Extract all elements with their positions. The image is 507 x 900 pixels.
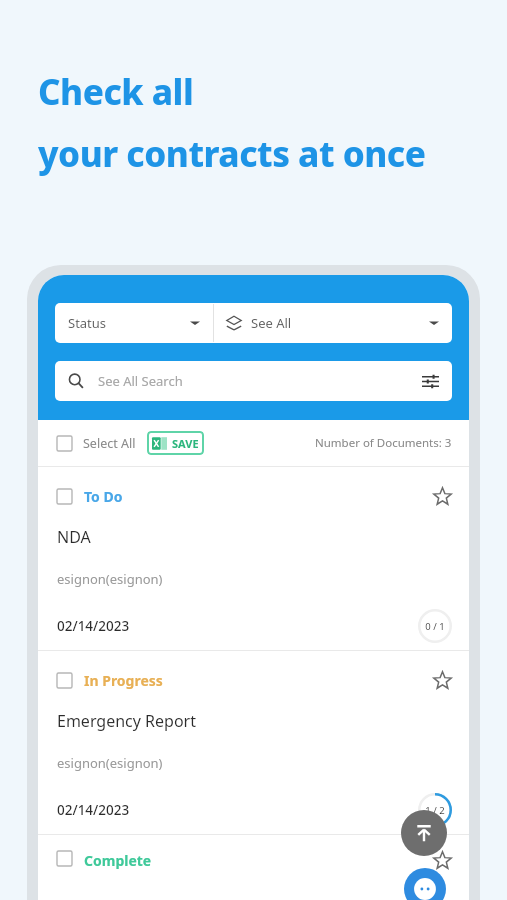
staticText: Emergency Report [57,710,196,732]
staticText: See All Search [98,372,183,390]
staticText: In Progress [84,671,163,690]
button[interactable]: To Do [38,467,469,650]
other: Favourite [433,487,452,506]
staticText: 1 / 2 [425,804,445,817]
other: Filter [422,373,439,390]
button[interactable]: Complete [38,835,469,895]
staticText: Number of Documents: 3 [315,435,452,451]
button[interactable]: Select All [57,435,136,452]
staticText: Check all [38,68,194,116]
staticText: 02/14/2023 [57,617,130,635]
button[interactable]: Search [55,361,452,401]
staticText: esignon(esignon) [57,570,163,588]
button[interactable]: SAVE [147,431,204,455]
button[interactable]: Scroll to top [401,810,447,856]
staticText: See All [251,314,292,332]
staticText: To Do [84,487,123,506]
staticText: 0 / 1 [425,620,445,633]
staticText: your contracts at once [38,130,426,178]
staticText: NDA [57,526,91,548]
staticText: Status [68,314,107,332]
button[interactable]: Support chat [404,868,446,900]
button[interactable]: See All [214,303,452,343]
other: Search [68,373,84,389]
staticText: 02/14/2023 [57,801,130,819]
staticText: Complete [84,851,152,870]
button[interactable]: Status [55,303,213,343]
staticText: SAVE [172,436,199,451]
staticText: esignon(esignon) [57,754,163,772]
other: Favourite [433,851,452,870]
staticText: Select All [83,435,136,452]
other: Favourite [433,671,452,690]
button[interactable]: In Progress [38,651,469,834]
